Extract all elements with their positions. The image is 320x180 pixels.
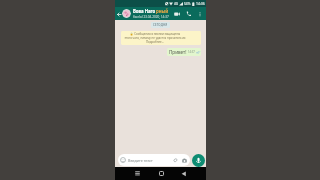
staticText: СЕГОДНЯ <box>153 23 168 27</box>
button[interactable]: Привет! <box>167 48 201 56</box>
button[interactable]: Record voice message <box>192 154 205 167</box>
button[interactable]: Attach <box>172 157 179 164</box>
button[interactable]: Recent apps <box>133 169 142 178</box>
button[interactable]: Contact photo <box>122 9 131 18</box>
staticText: 🔒 Сообщения и звонки защищены этого чата… <box>124 32 186 44</box>
staticText: 54% <box>184 2 191 6</box>
button[interactable]: Back <box>179 169 188 178</box>
staticText: Привет! <box>169 49 187 55</box>
button[interactable]: СЕГОДНЯ <box>151 22 170 28</box>
staticText: 4G <box>174 2 179 6</box>
button[interactable]: Voice call <box>183 7 194 20</box>
button[interactable]: Camera <box>181 157 188 164</box>
button[interactable]: More options <box>194 7 205 20</box>
staticText: Вова Наго <box>133 8 156 14</box>
button[interactable]: Video call <box>171 7 183 20</box>
staticText: 14:36 <box>196 1 205 6</box>
button[interactable]: Back <box>116 11 122 17</box>
button[interactable]: 🔒 Сообщения и звонки защищены этого чата… <box>121 31 201 45</box>
button[interactable]: Home <box>157 169 166 178</box>
staticText: Введите текст <box>128 158 153 163</box>
staticText: рный … <box>156 8 171 14</box>
staticText: был(а) 23.04.2020, 14:37 <box>133 15 169 19</box>
staticText: 14:37 <box>188 50 195 54</box>
button[interactable]: Введите текст <box>118 154 190 166</box>
